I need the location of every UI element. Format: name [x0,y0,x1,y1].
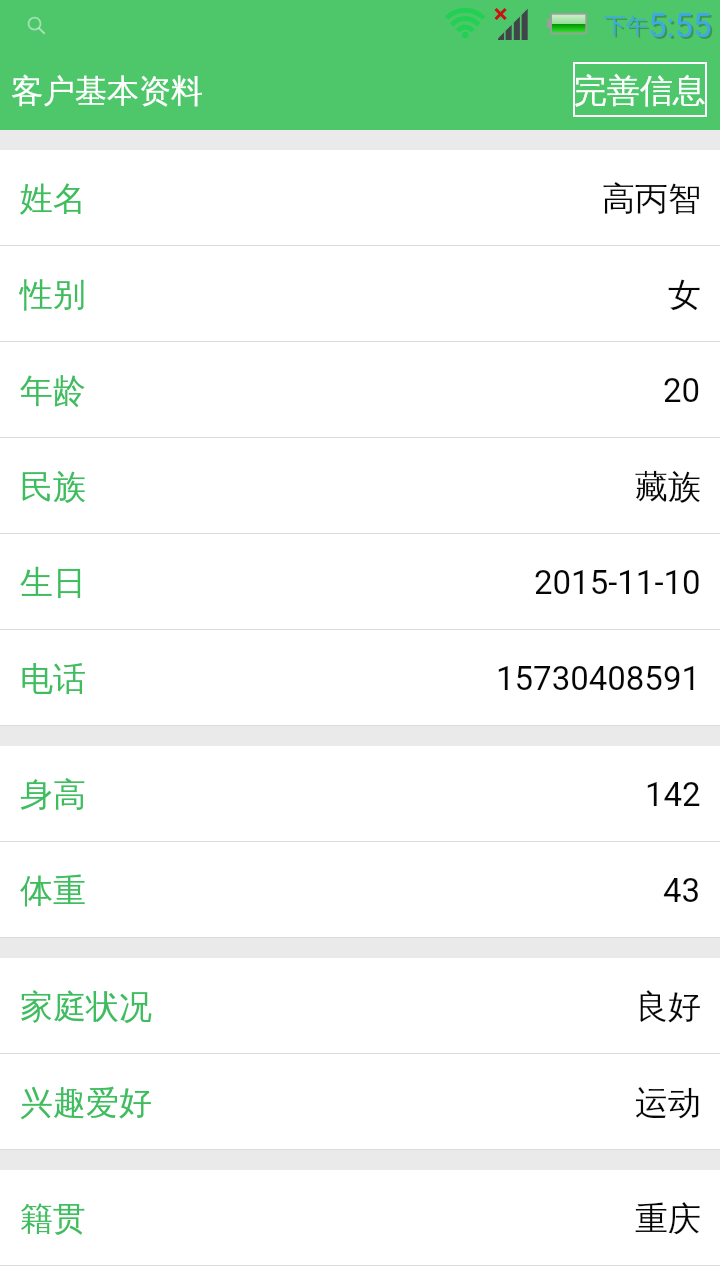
button[interactable]: Search [20,10,50,40]
button[interactable]: 体重 [0,842,720,938]
button[interactable]: 电话 [0,630,720,726]
staticText: 家庭状况 [20,986,152,1028]
button[interactable]: 性别 [0,246,720,342]
staticText: 姓名 [20,178,86,220]
staticText: 身高 [20,774,86,816]
staticText: 高丙智 [602,178,701,220]
staticText: 籍贯 [20,1198,86,1240]
staticText: 5:55 [648,6,712,45]
staticText: 生日 [20,562,86,604]
staticText: 运动 [635,1082,701,1124]
staticText: 20 [663,371,701,410]
button[interactable]: 年龄 [0,342,720,438]
button[interactable]: 兴趣爱好 [0,1054,720,1150]
staticText: 142 [645,775,701,814]
staticText: 女 [668,274,701,316]
staticText: 兴趣爱好 [20,1082,152,1124]
staticText: 民族 [20,466,86,508]
staticText: 下午 [606,14,650,42]
staticText: 重庆 [635,1198,701,1240]
staticText: 电话 [20,658,86,700]
button[interactable]: 完善信息 [574,63,706,116]
staticText: 完善信息 [574,70,706,112]
button[interactable]: 生日 [0,534,720,630]
staticText: 2015-11-10 [534,563,701,602]
staticText: 性别 [20,274,86,316]
staticText: 藏族 [635,466,701,508]
staticText: 43 [663,871,701,910]
staticText: 良好 [635,986,701,1028]
button[interactable]: 籍贯 [0,1170,720,1266]
staticText: 年龄 [20,370,86,412]
button[interactable]: 民族 [0,438,720,534]
button[interactable]: 身高 [0,746,720,842]
staticText: 下午 [604,12,648,40]
staticText: 5:55 [650,8,714,47]
button[interactable]: 姓名 [0,150,720,246]
staticText: 体重 [20,870,86,912]
staticText: 15730408591 [496,659,701,698]
staticText: 客户基本资料 [11,71,203,111]
button[interactable]: 家庭状况 [0,958,720,1054]
